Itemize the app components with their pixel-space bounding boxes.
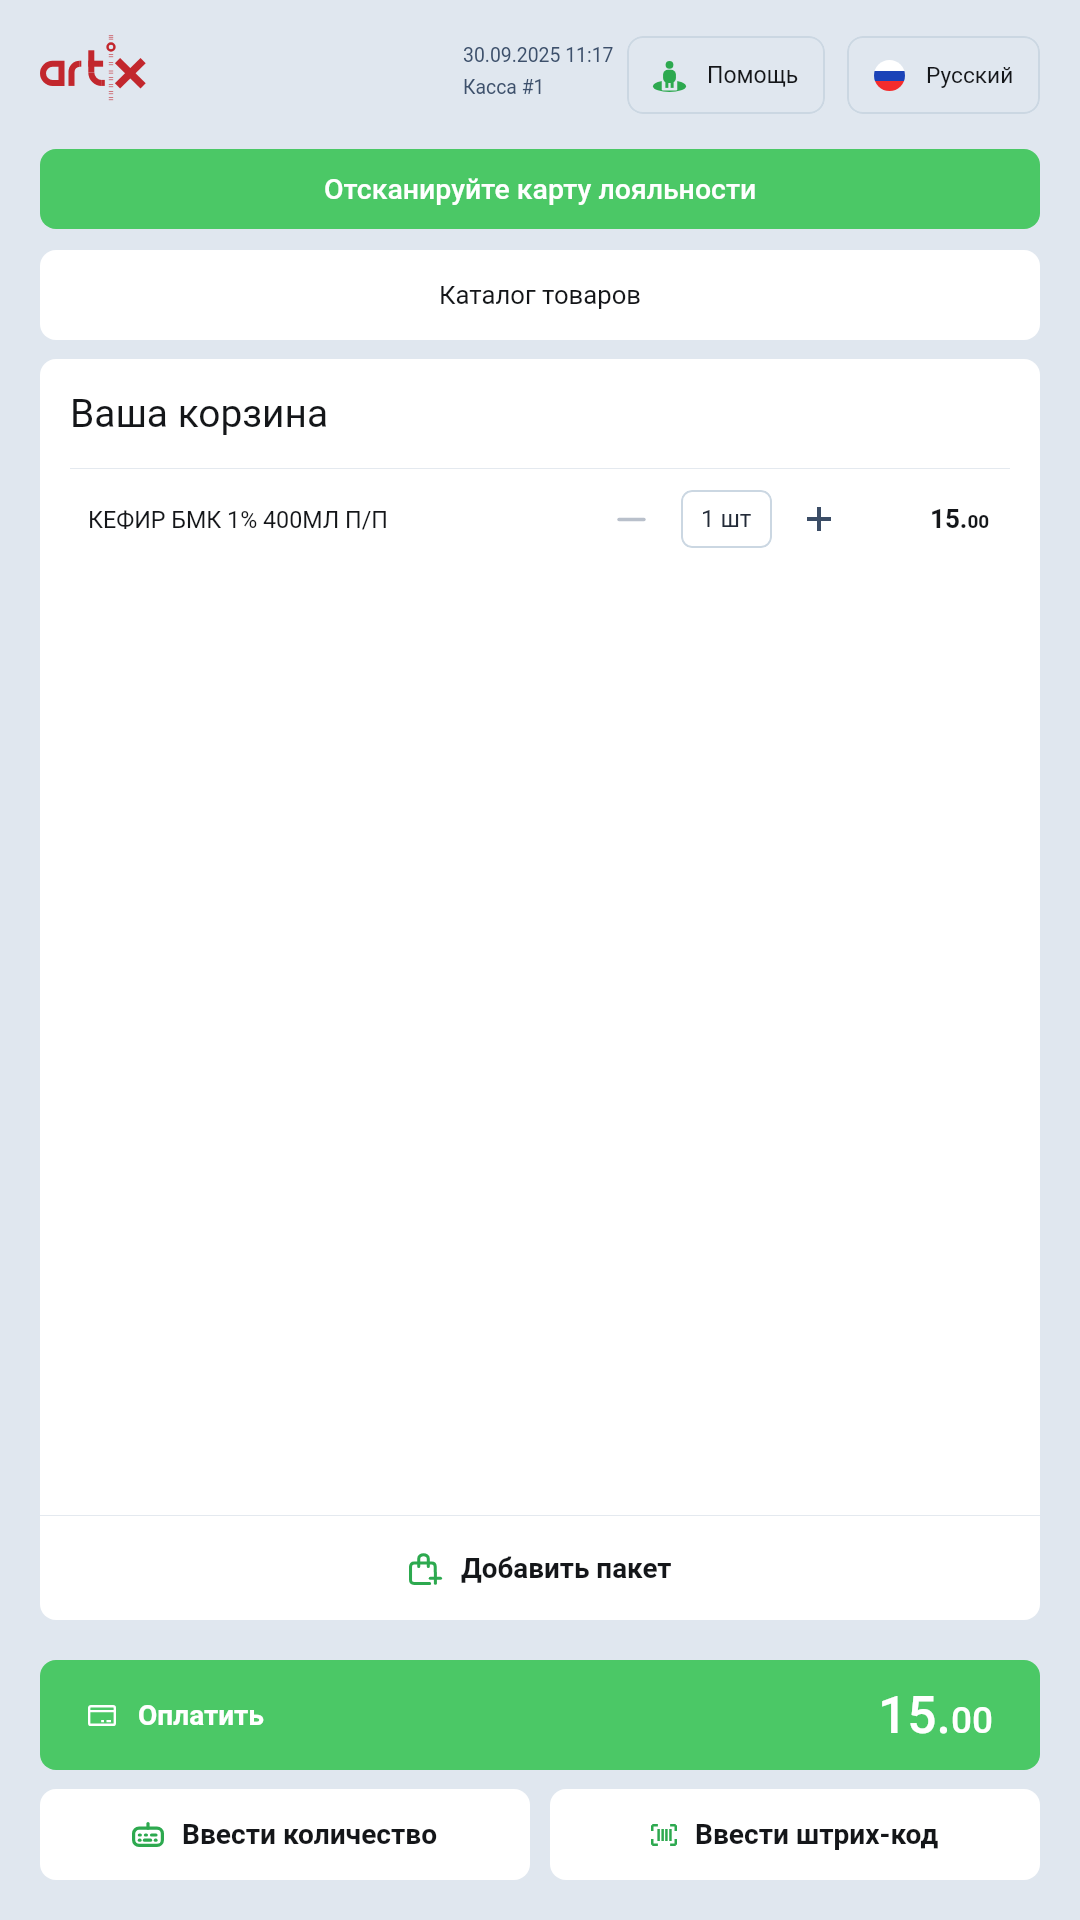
staticText: Ввести количество [182,1818,438,1851]
staticText: Каталог товаров [439,280,641,310]
button[interactable]: Ввести штрих-код [550,1789,1040,1880]
staticText: Русский [926,62,1014,89]
button[interactable]: Уменьшить количество [600,484,662,554]
staticText: Помощь [707,62,799,89]
staticText: Касса #1 [463,76,545,99]
button[interactable]: 1 шт [681,490,772,548]
staticText: 15.00 [930,504,990,534]
staticText: Ваша корзина [70,391,329,437]
button[interactable]: Ввести количество [40,1789,530,1880]
button[interactable]: Каталог товаров [40,250,1040,340]
other: Русский язык [874,60,905,91]
staticText: 30.09.2025 11:17 [463,44,614,67]
staticText: 15.00 [878,1685,993,1745]
button[interactable]: Помощь [627,36,825,114]
button[interactable]: Русский язык [847,36,1040,114]
staticText: Ввести штрих-код [695,1818,939,1851]
staticText: Добавить пакет [461,1552,672,1585]
button[interactable]: Отсканируйте карту лояльности [40,149,1040,229]
button[interactable]: Оплатить [40,1660,1040,1770]
staticText: Оплатить [138,1699,264,1732]
other: Помощь [653,59,686,92]
button[interactable]: Добавить пакет [40,1516,1040,1620]
button[interactable]: Увеличить количество [786,484,852,554]
staticText: 1 шт [701,505,752,533]
staticText: КЕФИР БМК 1% 400МЛ П/П [88,506,388,533]
staticText: Отсканируйте карту лояльности [324,173,757,206]
